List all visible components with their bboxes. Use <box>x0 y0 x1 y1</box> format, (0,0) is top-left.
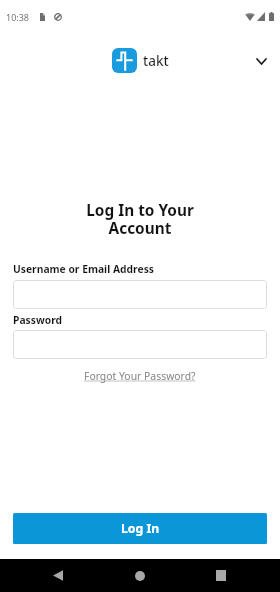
staticText: Username or Email Address <box>13 262 154 276</box>
button[interactable]: Home <box>123 559 157 592</box>
button[interactable]: Forgot Your Password? <box>84 369 196 383</box>
staticText: Password <box>13 313 63 327</box>
staticText: Log In to Your Account <box>0 200 280 239</box>
button[interactable]: Log In <box>13 513 267 544</box>
button[interactable]: Expand menu <box>250 50 272 72</box>
staticText: Forgot Your Password? <box>84 369 196 383</box>
staticText: 10:38 <box>6 11 30 23</box>
staticText: takt <box>143 52 169 70</box>
button[interactable] <box>13 330 267 359</box>
staticText: Log In <box>121 520 160 537</box>
button[interactable]: Back <box>41 559 75 592</box>
button[interactable] <box>13 280 267 309</box>
button[interactable]: Recent apps <box>204 559 238 592</box>
